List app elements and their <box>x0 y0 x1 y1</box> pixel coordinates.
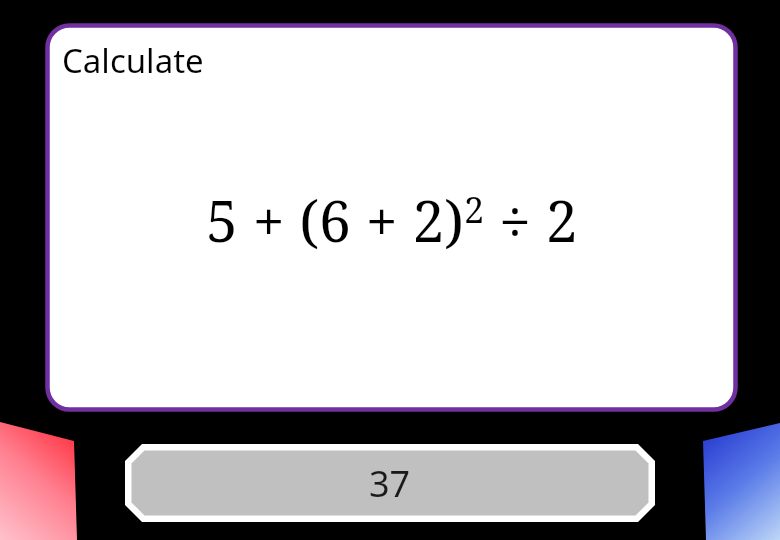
staticText: 5 + (6 + 2)2 ÷ 2 <box>206 181 578 259</box>
staticText: Calculate <box>62 38 204 83</box>
staticText: 37 <box>369 459 411 508</box>
button[interactable]: Answer 37 <box>122 441 658 525</box>
